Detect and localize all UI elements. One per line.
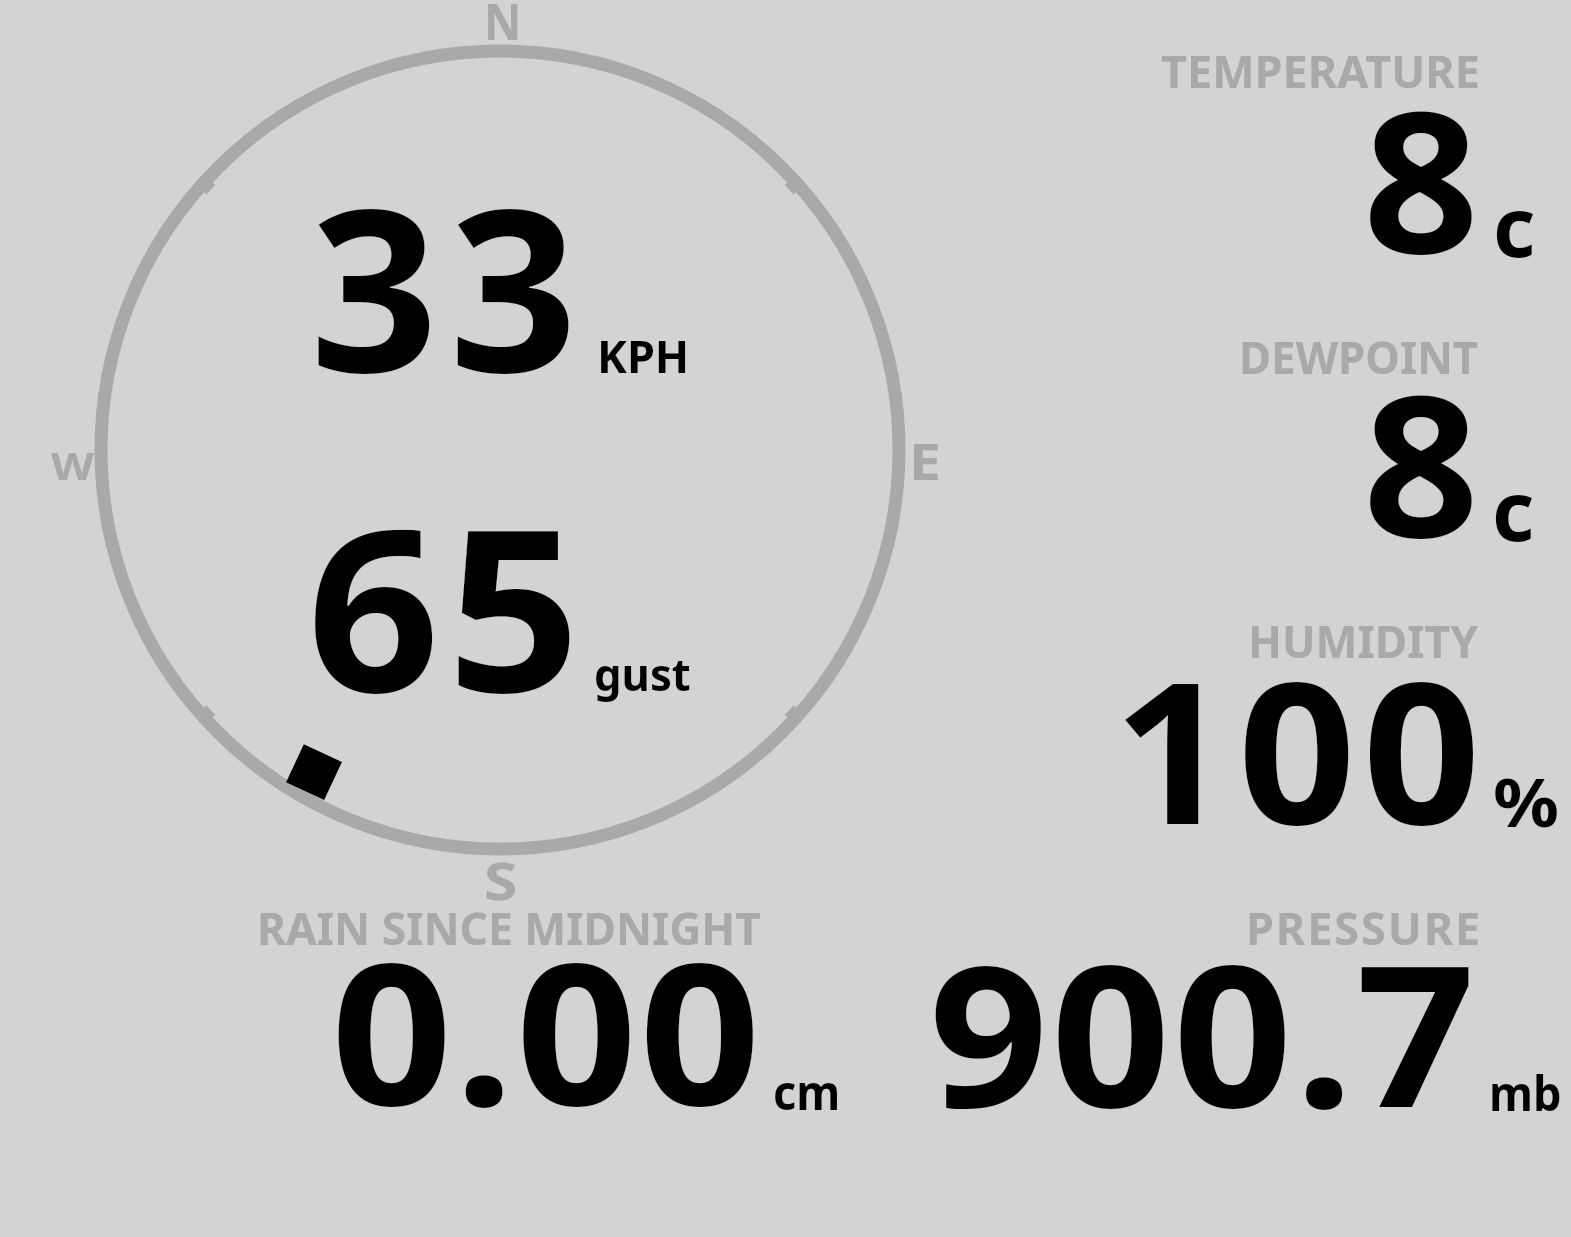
staticText: PRESSURE (1246, 897, 1483, 958)
button[interactable]: Rain since midnight (240, 900, 860, 1130)
button[interactable]: Temperature (1100, 40, 1571, 280)
staticText: c (1493, 169, 1536, 281)
staticText: mb (1489, 1060, 1562, 1125)
staticText: 900.7 (929, 897, 1479, 1164)
staticText: TEMPERATURE (1161, 40, 1480, 101)
staticText: 33 (310, 133, 589, 438)
staticText: cm (773, 1058, 841, 1125)
staticText: E (909, 425, 941, 494)
button[interactable]: Pressure (900, 900, 1571, 1130)
button[interactable]: Humidity (1100, 610, 1571, 850)
staticText: 0.00 (331, 895, 763, 1162)
staticText: c (1492, 453, 1535, 565)
staticText: KPH (597, 325, 690, 386)
staticText: HUMIDITY (1248, 610, 1478, 671)
staticText: 65 (307, 453, 588, 758)
staticText: 100 (1113, 614, 1488, 881)
staticText: S (484, 844, 518, 915)
staticText: % (1493, 756, 1560, 846)
staticText: gust (594, 643, 691, 704)
staticText: 8 (1363, 327, 1480, 594)
staticText: 8 (1363, 43, 1480, 310)
staticText: RAIN SINCE MIDNIGHT (257, 897, 762, 958)
button[interactable]: Dewpoint (1100, 330, 1571, 560)
button[interactable]: Wind direction and speed (60, 20, 940, 890)
staticText: N (484, 0, 522, 55)
staticText: DEWPOINT (1239, 326, 1479, 387)
staticText: W (51, 439, 94, 491)
